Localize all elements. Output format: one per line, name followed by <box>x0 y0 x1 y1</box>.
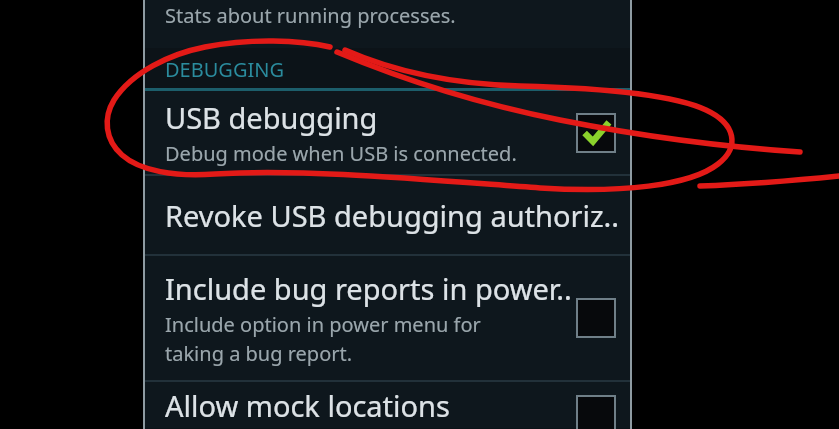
button[interactable]: Stats about running processes. <box>143 0 632 48</box>
staticText: taking a bug report. <box>165 340 353 367</box>
button[interactable]: Revoke USB debugging authoriz.. <box>143 176 632 254</box>
staticText: Revoke USB debugging authoriz.. <box>165 196 620 235</box>
staticText: DEBUGGING <box>165 56 284 83</box>
button[interactable]: Include bug reports in power menu <box>577 299 615 337</box>
staticText: USB debugging <box>165 98 378 137</box>
button[interactable]: Include bug reports in power.. <box>143 256 632 380</box>
staticText: Stats about running processes. <box>165 2 456 29</box>
button[interactable]: Allow mock locations <box>143 382 632 428</box>
button[interactable]: USB debugging <box>143 91 632 174</box>
staticText: Debug mode when USB is connected. <box>165 140 517 167</box>
button[interactable]: Allow mock locations <box>577 396 615 429</box>
staticText: Include bug reports in power.. <box>165 269 572 308</box>
staticText: Allow mock locations <box>165 386 450 425</box>
staticText: Include option in power menu for <box>165 311 481 338</box>
button[interactable]: USB debugging enabled <box>577 114 615 152</box>
